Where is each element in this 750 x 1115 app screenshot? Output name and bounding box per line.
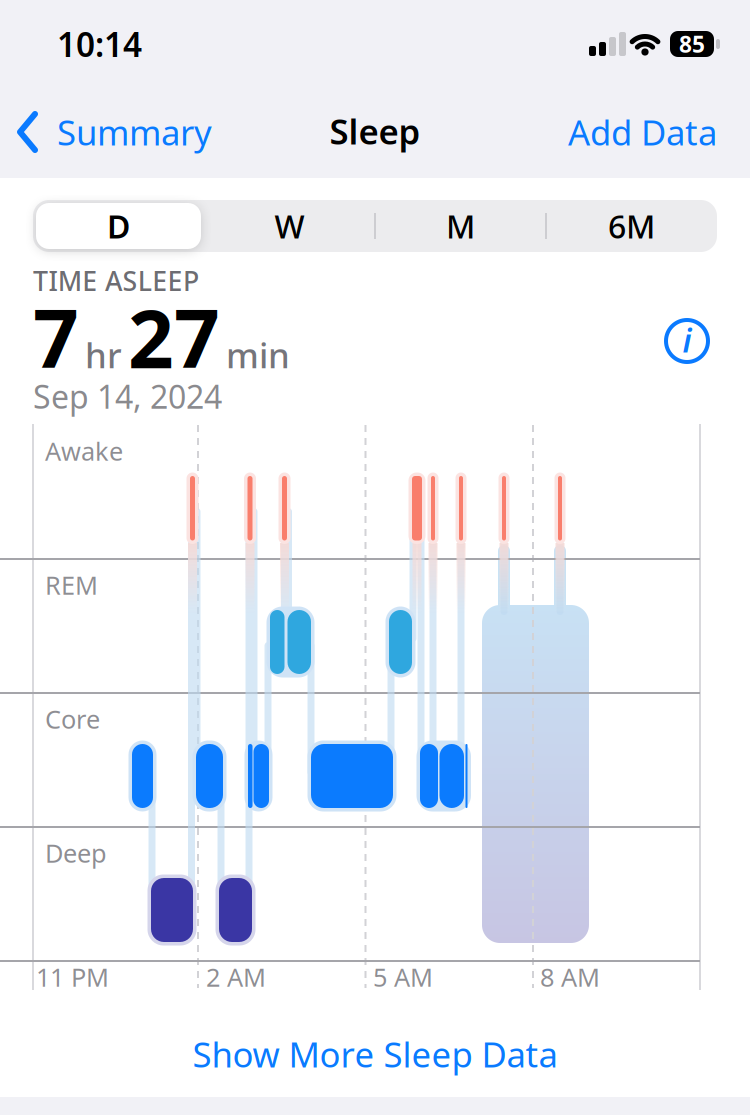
staticText: min	[226, 332, 290, 378]
staticText: 8 AM	[540, 960, 600, 994]
staticText: 85	[679, 29, 705, 59]
staticText: 27	[128, 284, 220, 390]
button[interactable]: Summary	[17, 110, 212, 154]
staticText: TIME ASLEEP	[33, 263, 199, 298]
staticText: 10:14	[57, 22, 142, 66]
button[interactable]: D	[36, 203, 201, 249]
button[interactable]: About Time Asleep	[664, 318, 710, 364]
staticText: 11 PM	[36, 960, 109, 994]
staticText: Show More Sleep Data	[192, 1031, 557, 1077]
staticText: 2 AM	[206, 960, 266, 994]
staticText: Sep 14, 2024	[33, 375, 222, 417]
staticText: Deep	[45, 836, 107, 870]
button[interactable]: W	[204, 200, 375, 252]
button[interactable]: 6M	[546, 200, 717, 252]
staticText: Awake	[45, 434, 123, 468]
staticText: hr	[85, 332, 122, 378]
staticText: D	[107, 205, 130, 247]
staticText: i	[682, 319, 691, 361]
staticText: Add Data	[568, 109, 717, 155]
staticText: Summary	[57, 109, 212, 155]
button[interactable]: Show More Sleep Data	[192, 1031, 557, 1077]
staticText: W	[274, 205, 304, 247]
button[interactable]: Add Data	[568, 110, 717, 154]
staticText: 7	[33, 284, 79, 390]
button[interactable]: M	[375, 200, 546, 252]
staticText: 5 AM	[373, 960, 433, 994]
staticText: REM	[45, 568, 98, 602]
staticText: 6M	[608, 205, 655, 247]
staticText: Sleep	[329, 108, 420, 154]
staticText: M	[446, 205, 475, 247]
staticText: Core	[45, 702, 100, 736]
